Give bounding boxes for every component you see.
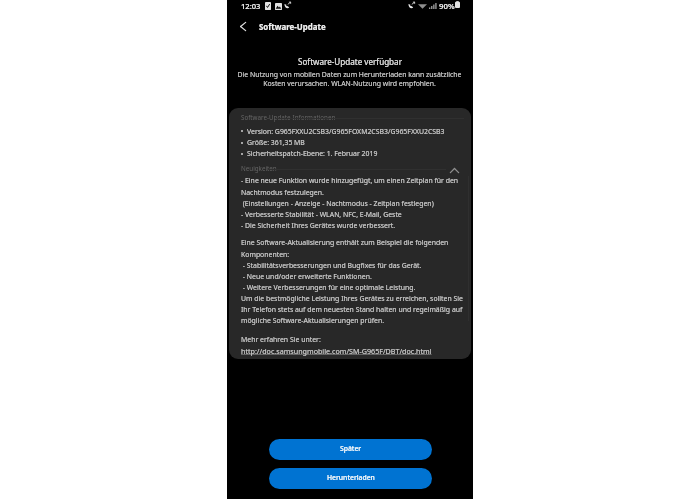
button[interactable]: Herunterladen [269, 468, 432, 489]
staticText: Neuigkeiten [241, 164, 277, 173]
staticText: Herunterladen [327, 473, 375, 482]
staticText: Sicherheitspatch-Ebene: 1. Februar 2019 [247, 149, 378, 158]
staticText: 90% [439, 1, 455, 12]
staticText: - Eine neue Funktion wurde hinzugefügt, … [241, 176, 469, 230]
staticText: Mehr erfahren Sie unter: [241, 335, 321, 344]
staticText: Software-Update [259, 22, 326, 33]
staticText: 12:03 [241, 1, 261, 11]
staticText: Die Nutzung von mobilen Daten zum Herunt… [237, 70, 462, 88]
button[interactable]: Später [269, 439, 432, 460]
staticText: http://doc.samsungmobile.com/SM-G965F/DB… [241, 346, 432, 356]
staticText: Version: G965FXXU2CSB3/G965FOXM2CSB3/G96… [247, 127, 445, 136]
button[interactable]: Back [230, 14, 255, 38]
staticText: Eine Software-Aktualisierung enthält zum… [241, 238, 471, 325]
staticText: Software-Update verfügbar [227, 56, 473, 67]
staticText: Später [340, 444, 362, 453]
staticText: Software-Update-Informationen [241, 113, 336, 122]
staticText: Größe: 361,35 MB [247, 138, 305, 147]
